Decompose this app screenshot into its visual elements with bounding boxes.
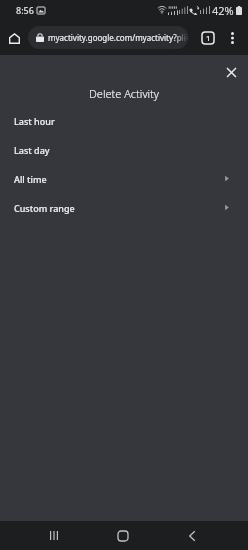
button[interactable]: Last day: [0, 135, 248, 164]
button[interactable]: Custom range: [0, 193, 248, 222]
staticText: Delete Activity: [0, 86, 248, 101]
staticText: Last hour: [14, 115, 55, 127]
button[interactable]: More options: [221, 26, 244, 49]
button[interactable]: Close: [217, 58, 245, 86]
button[interactable]: Last hour: [0, 106, 248, 135]
button[interactable]: Tabs: [196, 26, 219, 49]
button[interactable]: Recents: [36, 521, 72, 550]
staticText: Last day: [14, 144, 50, 156]
staticText: 8:56: [16, 4, 34, 16]
staticText: 1: [206, 33, 211, 43]
button[interactable]: Back: [174, 521, 210, 550]
staticText: Custom range: [14, 202, 75, 214]
button[interactable]: All time: [0, 164, 248, 193]
button[interactable]: Home: [3, 27, 25, 49]
staticText: 42%: [212, 3, 234, 18]
button[interactable]: myactivity.google.com/myactivity?pli=1: [28, 26, 188, 49]
button[interactable]: Home: [105, 521, 141, 550]
staticText: myactivity.google.com/myactivity?pli=1: [48, 32, 188, 43]
staticText: All time: [14, 173, 47, 185]
